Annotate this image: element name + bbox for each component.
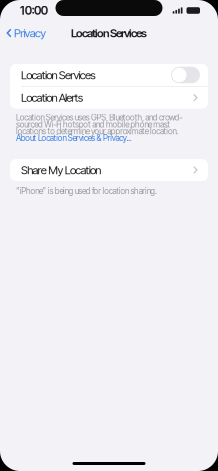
staticText: Location Services [21,68,95,82]
staticText: Privacy [14,26,46,40]
staticText: About Location Services & Privacy... [16,133,132,143]
button[interactable]: About Location Services & Privacy... [16,133,132,143]
button[interactable]: Privacy [0,22,50,44]
staticText: Location Services [71,26,147,40]
staticText: locations to determine your approximate … [16,126,178,136]
button[interactable]: Share My Location [10,159,208,181]
staticText: sourced Wi-Fi hotspot and mobile phone m… [16,119,170,129]
staticText: Share My Location [21,163,101,177]
button[interactable]: Location Services [10,64,208,86]
staticText: Location Services uses GPS, Bluetooth, a… [16,113,182,123]
button[interactable]: Location Alerts [10,87,208,109]
staticText: “iPhone” is being used for location shar… [16,186,157,196]
staticText: 10:00 [20,3,48,18]
staticText: Location Alerts [21,91,83,105]
